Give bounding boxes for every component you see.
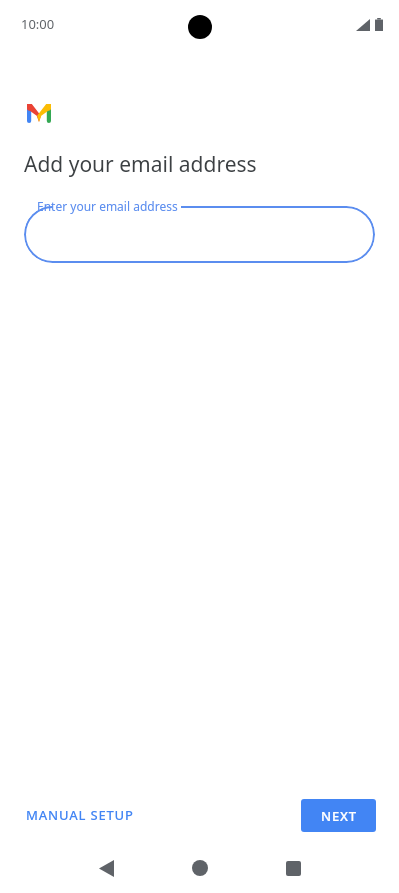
staticText: MANUAL SETUP [26,806,134,824]
button[interactable]: NEXT [301,799,376,832]
button[interactable]: Back [82,844,130,892]
staticText: 10:00 [21,15,55,33]
button[interactable]: Home [176,844,224,892]
staticText: NEXT [321,807,357,825]
button[interactable] [24,206,375,263]
button[interactable]: Recent apps [269,844,317,892]
button[interactable]: MANUAL SETUP [14,798,146,832]
staticText: Add your email address [24,150,257,179]
staticText: Enter your email address [37,198,178,214]
